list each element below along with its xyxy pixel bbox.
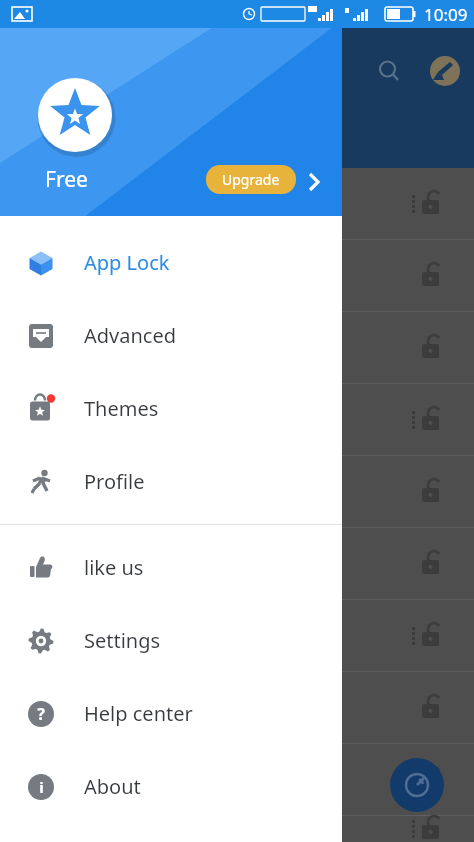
button[interactable]: Account details bbox=[300, 168, 328, 196]
button[interactable] bbox=[0, 600, 474, 671]
button[interactable]: i bbox=[0, 750, 342, 823]
staticText: like us bbox=[84, 554, 144, 581]
button[interactable]: Upgrade bbox=[206, 165, 296, 194]
staticText: i bbox=[39, 777, 44, 797]
staticText: Advanced bbox=[84, 322, 176, 349]
staticText: Upgrade bbox=[222, 170, 280, 189]
staticText: Help center bbox=[84, 700, 193, 727]
button[interactable]: ? bbox=[0, 677, 342, 750]
staticText: ? bbox=[37, 703, 45, 725]
button[interactable]: Profile bbox=[0, 445, 342, 518]
button[interactable] bbox=[0, 384, 474, 455]
button[interactable]: like us bbox=[0, 531, 342, 604]
staticText: 10:09 bbox=[424, 3, 468, 26]
button[interactable] bbox=[0, 528, 474, 599]
button[interactable] bbox=[0, 168, 474, 239]
button[interactable]: Free bbox=[0, 28, 342, 216]
button[interactable]: Settings bbox=[0, 604, 342, 677]
button[interactable]: Search bbox=[368, 50, 410, 92]
button[interactable] bbox=[0, 672, 474, 743]
staticText: Settings bbox=[84, 627, 161, 654]
button[interactable]: App Lock bbox=[0, 226, 342, 299]
button[interactable] bbox=[0, 744, 474, 815]
button[interactable]: Themes bbox=[0, 372, 342, 445]
staticText: App Lock bbox=[84, 249, 170, 276]
button[interactable] bbox=[0, 456, 474, 527]
staticText: VIDEOS bbox=[24, 132, 80, 152]
staticText: Profile bbox=[84, 468, 145, 495]
button[interactable]: Clean bbox=[424, 50, 466, 92]
staticText: Free bbox=[45, 165, 88, 194]
staticText: About bbox=[84, 773, 141, 800]
staticText: Themes bbox=[84, 395, 159, 422]
button[interactable]: Advanced bbox=[0, 299, 342, 372]
button[interactable]: Boost bbox=[390, 758, 444, 812]
button[interactable] bbox=[0, 312, 474, 383]
button[interactable] bbox=[0, 816, 474, 842]
button[interactable] bbox=[0, 240, 474, 311]
